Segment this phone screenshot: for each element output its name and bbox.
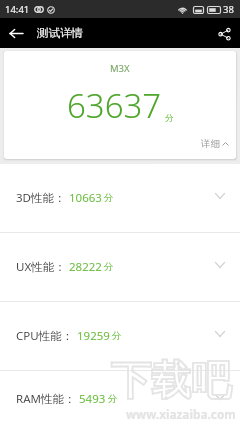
staticText: 63637 [67,83,162,128]
button[interactable]: Back [0,18,32,48]
staticText: 38 [223,3,234,16]
staticText: 5493 [79,391,106,407]
staticText: 10663 [69,190,102,206]
staticText: RAM性能： [16,391,76,407]
staticText: 分 [165,113,174,124]
button[interactable]: CPU性能： [0,302,240,370]
staticText: 3D性能： [16,190,66,206]
staticText: 下载吧 [111,355,231,405]
button[interactable]: Share [208,18,240,48]
staticText: 14:41 [5,3,30,16]
staticText: 分 [108,393,118,405]
staticText: 详细 [201,138,220,150]
staticText: 测试详情 [37,26,83,40]
staticText: CPU性能： [16,328,74,344]
staticText: M3X [110,62,130,75]
button[interactable]: 3D性能： [0,164,240,232]
staticText: UX性能： [16,259,66,275]
button[interactable]: UX性能： [0,233,240,301]
button[interactable]: RAM性能： [0,371,240,426]
staticText: 19259 [77,328,110,344]
staticText: 分 [112,330,122,342]
staticText: 28222 [69,259,102,275]
staticText: www.xiazaiba.com [126,406,236,422]
staticText: 分 [104,192,114,204]
button[interactable]: 详细 [201,138,229,150]
staticText: 分 [104,261,114,273]
